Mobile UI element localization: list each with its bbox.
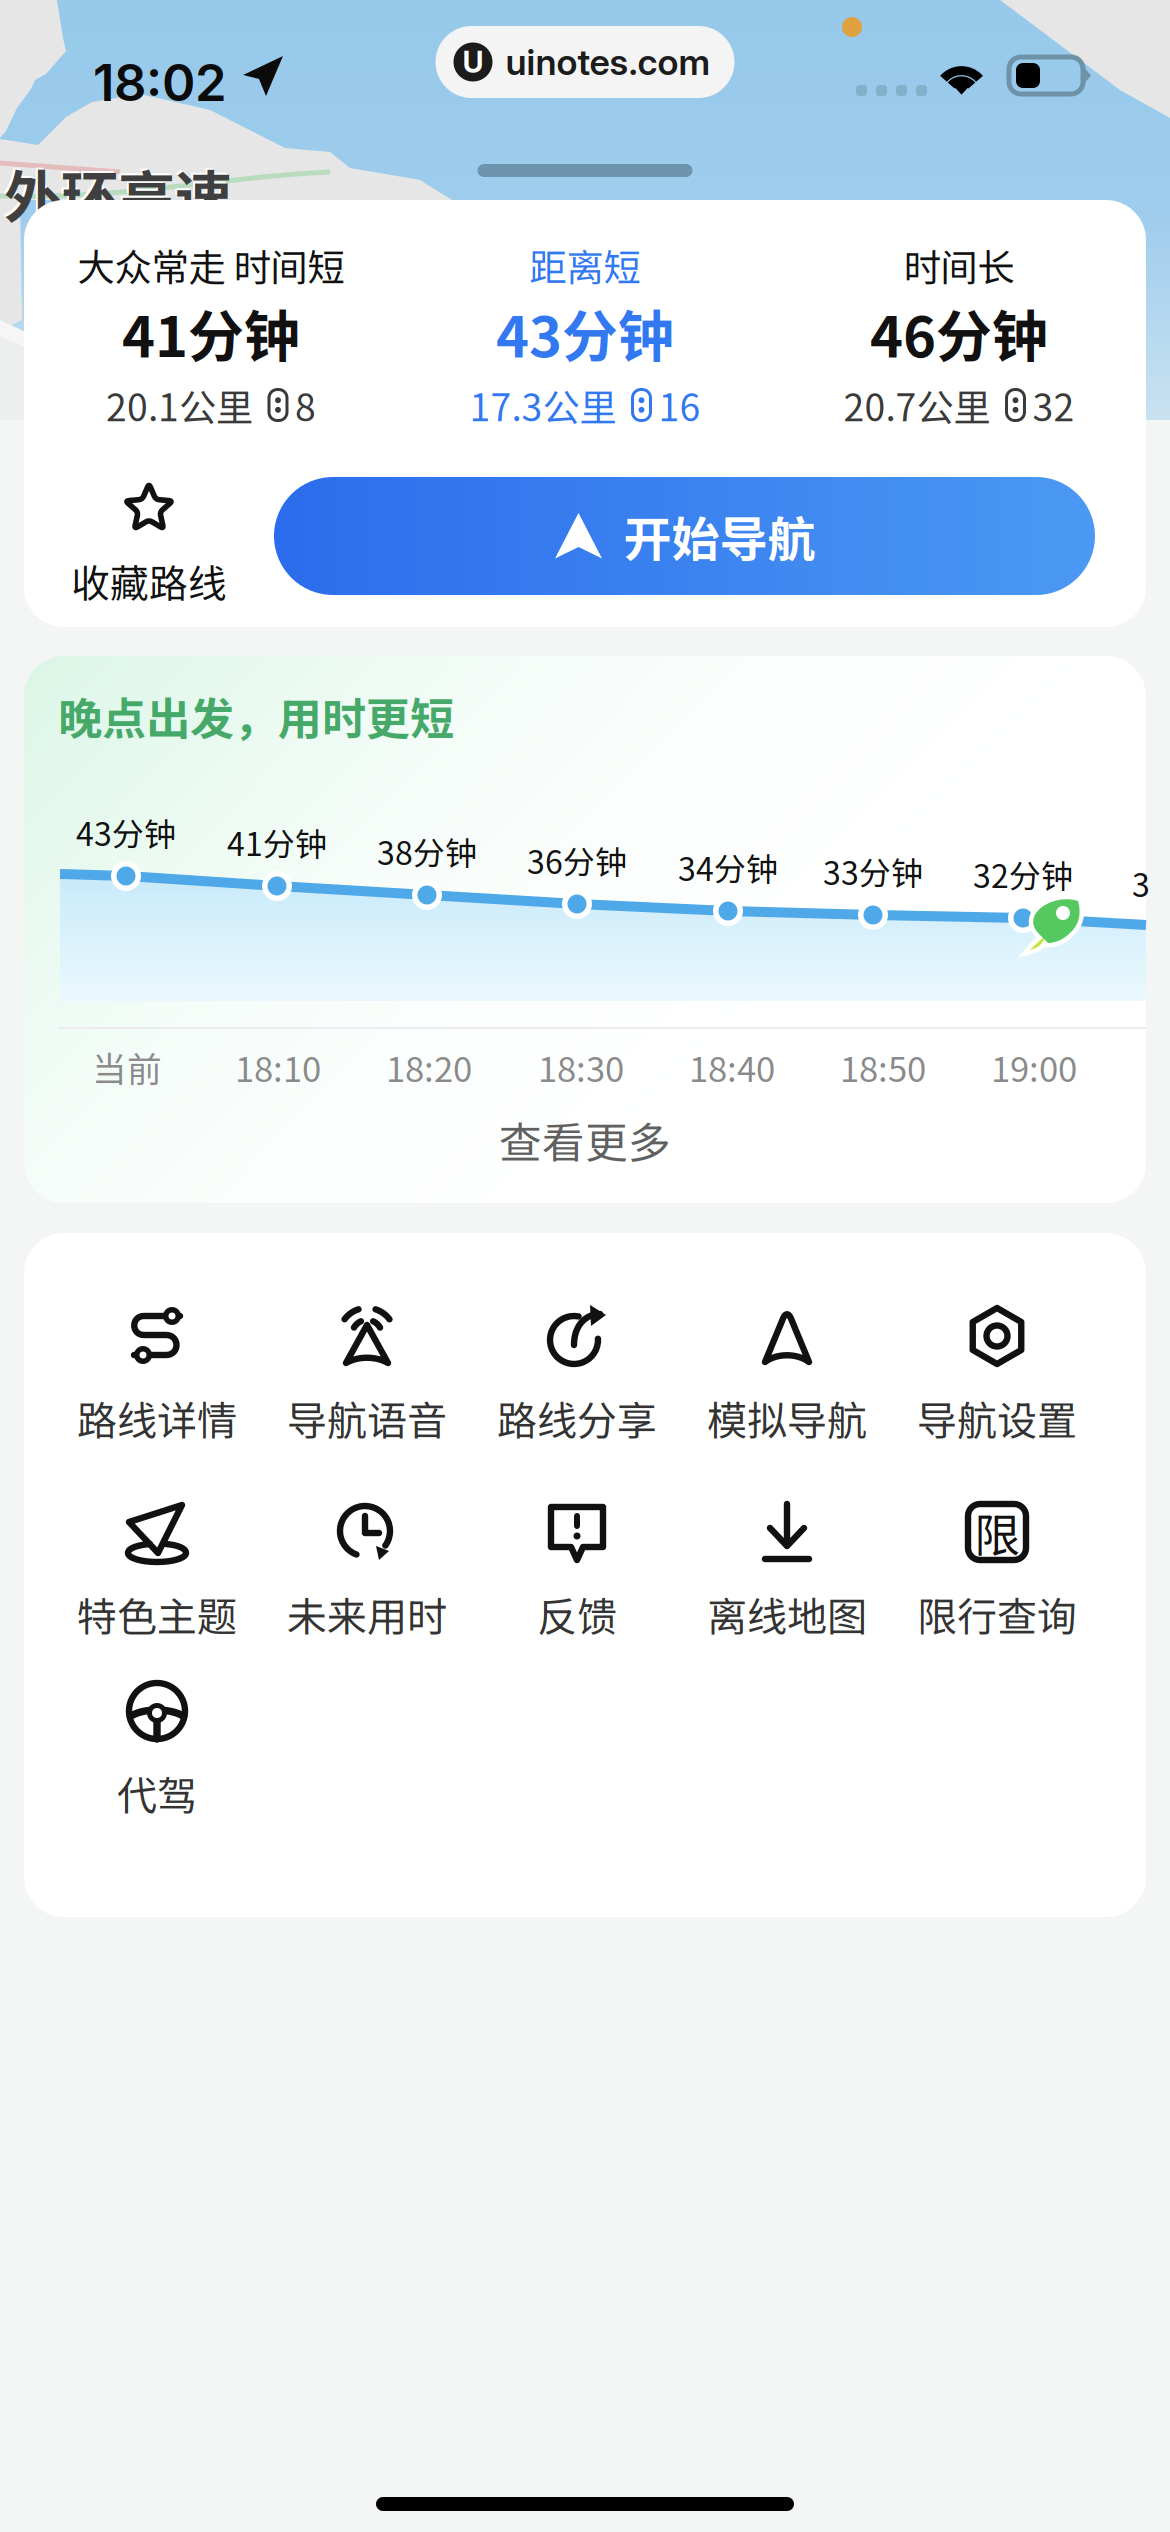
staticText: 18:50 [840, 1042, 926, 1092]
button[interactable]: 离线地图 [682, 1501, 892, 1633]
staticText: 大众常走 时间短 [77, 238, 344, 292]
staticText: 38分钟 [377, 828, 477, 874]
staticText: 外环高速 [2, 150, 230, 233]
staticText: 18:02 [93, 52, 227, 113]
staticText: 限 [974, 1499, 1019, 1565]
staticText: 距离短 [529, 238, 640, 292]
staticText: 收藏路线 [71, 553, 227, 609]
button[interactable]: 收藏路线 [24, 473, 274, 598]
staticText: 36分钟 [527, 837, 627, 883]
button[interactable]: 开始导航 [274, 477, 1095, 595]
button[interactable]: 特色主题 [52, 1501, 262, 1633]
staticText: 3 [1132, 860, 1150, 906]
staticText: 路线分享 [497, 1389, 657, 1447]
staticText: 18:10 [235, 1042, 321, 1092]
staticText: 43分钟 [496, 292, 674, 373]
button[interactable]: 路线详情 [52, 1305, 262, 1437]
button[interactable]: 查看更多 [24, 1112, 1146, 1168]
staticText: 模拟导航 [707, 1389, 867, 1447]
staticText: 19:00 [991, 1042, 1077, 1092]
staticText: 时间长 [903, 238, 1014, 292]
staticText: U [462, 44, 483, 80]
staticText: 8 [295, 378, 316, 432]
staticText: 反馈 [537, 1585, 617, 1643]
button[interactable]: 模拟导航 [682, 1305, 892, 1437]
staticText: 41分钟 [122, 292, 300, 373]
staticText: 外环高速 [4, 152, 232, 235]
staticText: 导航语音 [287, 1389, 447, 1447]
button[interactable]: 代驾 [52, 1680, 262, 1812]
staticText: uinotes.com [505, 40, 710, 84]
button[interactable]: 大众常走 时间短 [24, 238, 398, 432]
button[interactable]: 限 [892, 1501, 1102, 1633]
button[interactable]: 导航语音 [262, 1305, 472, 1437]
staticText: 未来用时 [287, 1585, 447, 1643]
staticText: 限行查询 [917, 1585, 1077, 1643]
button[interactable]: 未来用时 [262, 1501, 472, 1633]
button[interactable]: 时间长 [772, 238, 1146, 432]
staticText: 晚点出发，用时更短 [58, 684, 454, 748]
staticText: 17.3公里 [469, 378, 616, 432]
button[interactable]: 距离短 [398, 238, 772, 432]
staticText: 离线地图 [707, 1585, 867, 1643]
staticText: 41分钟 [227, 819, 327, 865]
staticText: 开始导航 [623, 501, 815, 571]
staticText: 18:40 [689, 1042, 775, 1092]
staticText: 当前 [92, 1042, 162, 1092]
staticText: 18:30 [538, 1042, 624, 1092]
staticText: 32分钟 [973, 851, 1073, 897]
staticText: 46分钟 [870, 292, 1048, 373]
staticText: 16 [658, 378, 700, 432]
staticText: 导航设置 [917, 1389, 1077, 1447]
staticText: 代驾 [117, 1764, 197, 1822]
button[interactable]: 反馈 [472, 1501, 682, 1633]
button[interactable]: 路线分享 [472, 1305, 682, 1437]
staticText: 18:20 [386, 1042, 472, 1092]
staticText: 33分钟 [823, 848, 923, 894]
staticText: 20.1公里 [106, 378, 253, 432]
staticText: 20.7公里 [843, 378, 990, 432]
staticText: 查看更多 [499, 1109, 671, 1171]
staticText: 34分钟 [678, 844, 778, 890]
staticText: 路线详情 [77, 1389, 237, 1447]
staticText: 43分钟 [76, 809, 176, 855]
staticText: 特色主题 [77, 1585, 237, 1643]
button[interactable]: 导航设置 [892, 1305, 1102, 1437]
staticText: 32 [1032, 378, 1074, 432]
